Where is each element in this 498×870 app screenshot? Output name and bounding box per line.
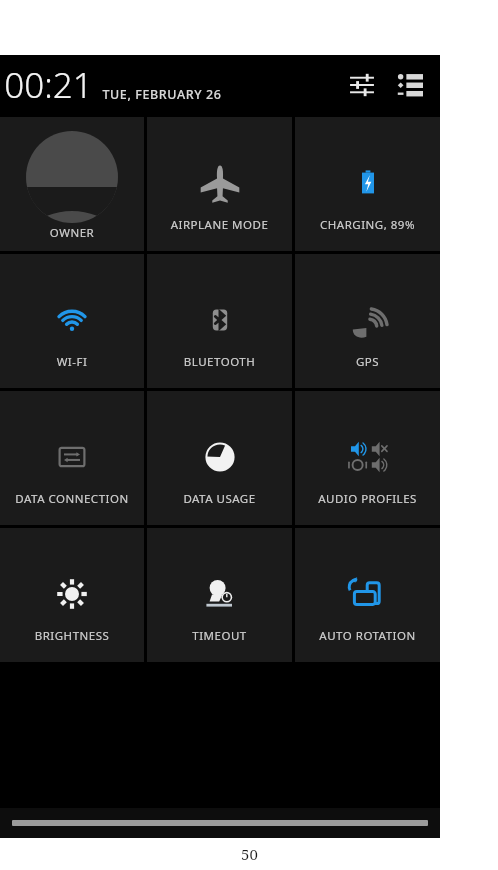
- button[interactable]: CHARGING, 89%: [295, 117, 440, 251]
- button[interactable]: BLUETOOTH: [147, 254, 292, 388]
- staticText: TIMEOUT: [147, 628, 292, 644]
- button[interactable]: AIRPLANE MODE: [147, 117, 292, 251]
- staticText: 00:21: [4, 61, 93, 109]
- button[interactable]: Drag handle: [0, 808, 440, 838]
- button[interactable]: BRIGHTNESS: [0, 528, 144, 662]
- staticText: OWNER: [0, 225, 144, 241]
- staticText: AIRPLANE MODE: [147, 217, 292, 233]
- button[interactable]: WI-FI: [0, 254, 144, 388]
- staticText: WI-FI: [0, 354, 144, 370]
- staticText: BRIGHTNESS: [0, 628, 144, 644]
- button[interactable]: Notifications list: [390, 65, 430, 105]
- button[interactable]: TIMEOUT: [147, 528, 292, 662]
- button[interactable]: OWNER: [0, 117, 144, 251]
- button[interactable]: Settings: [342, 65, 382, 105]
- staticText: BLUETOOTH: [147, 354, 292, 370]
- staticText: AUDIO PROFILES: [295, 491, 440, 507]
- button[interactable]: AUDIO PROFILES: [295, 391, 440, 525]
- staticText: 50: [241, 844, 258, 864]
- staticText: TUE, FEBRUARY 26: [102, 86, 222, 103]
- button[interactable]: GPS: [295, 254, 440, 388]
- staticText: AUTO ROTATION: [295, 628, 440, 644]
- staticText: GPS: [295, 354, 440, 370]
- button[interactable]: AUTO ROTATION: [295, 528, 440, 662]
- staticText: DATA CONNECTION: [0, 491, 144, 507]
- staticText: DATA USAGE: [147, 491, 292, 507]
- button[interactable]: DATA CONNECTION: [0, 391, 144, 525]
- button[interactable]: DATA USAGE: [147, 391, 292, 525]
- staticText: CHARGING, 89%: [295, 217, 440, 233]
